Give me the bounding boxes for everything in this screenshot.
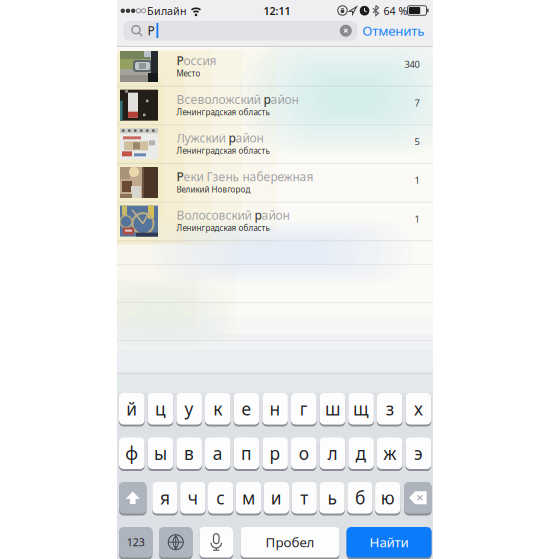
staticText: 12:11 bbox=[263, 4, 290, 18]
button[interactable]: Всеволожский bbox=[117, 86, 433, 124]
button[interactable]: и bbox=[264, 482, 289, 515]
button[interactable]: ч bbox=[180, 482, 205, 515]
staticText: айон bbox=[261, 207, 289, 223]
button[interactable]: Диктовка bbox=[199, 527, 233, 559]
button[interactable]: с bbox=[208, 482, 233, 515]
button[interactable]: Р bbox=[117, 47, 433, 86]
staticText: р bbox=[228, 130, 235, 146]
button[interactable]: Р bbox=[117, 163, 433, 202]
staticText: ь bbox=[328, 486, 337, 509]
button[interactable]: э bbox=[406, 437, 431, 471]
button[interactable]: Shift bbox=[119, 482, 146, 515]
staticText: з bbox=[386, 397, 394, 420]
staticText: г bbox=[300, 397, 308, 420]
staticText: м bbox=[242, 486, 255, 509]
button[interactable]: б bbox=[347, 482, 372, 515]
button[interactable]: щ bbox=[348, 393, 374, 426]
staticText: Отменить bbox=[362, 22, 424, 39]
staticText: в bbox=[184, 442, 194, 465]
staticText: 1 bbox=[414, 213, 419, 225]
button[interactable]: Удалить bbox=[404, 482, 431, 515]
staticText: о bbox=[299, 442, 309, 465]
button[interactable]: Отменить bbox=[362, 22, 424, 39]
button[interactable]: ю bbox=[375, 482, 400, 515]
staticText: айон bbox=[270, 91, 298, 107]
button[interactable]: к bbox=[205, 393, 231, 426]
staticText: Всеволожский bbox=[176, 91, 263, 107]
button[interactable]: г bbox=[291, 393, 317, 426]
staticText: Место bbox=[176, 68, 200, 79]
staticText: 1 bbox=[414, 174, 419, 186]
staticText: р bbox=[270, 442, 281, 465]
button[interactable]: ж bbox=[377, 437, 402, 471]
staticText: у bbox=[185, 397, 194, 420]
staticText: 5 bbox=[414, 135, 419, 148]
staticText: ю bbox=[381, 486, 395, 509]
button[interactable]: Сменить клавиатуру bbox=[159, 527, 192, 559]
staticText: Великий Новгород bbox=[176, 184, 250, 195]
staticText: е bbox=[241, 397, 251, 420]
staticText: п bbox=[241, 442, 252, 465]
staticText: р bbox=[254, 207, 261, 223]
staticText: ж bbox=[383, 442, 396, 465]
button[interactable]: м bbox=[236, 482, 261, 515]
staticText: я bbox=[160, 486, 170, 509]
button[interactable]: т bbox=[292, 482, 317, 515]
staticText: Пробел bbox=[265, 533, 314, 551]
staticText: 7 bbox=[414, 97, 419, 109]
staticText: ц bbox=[155, 397, 166, 420]
staticText: с bbox=[216, 486, 225, 509]
staticText: Ленинградская область bbox=[176, 223, 269, 233]
button[interactable]: й bbox=[119, 393, 145, 426]
staticText: к bbox=[213, 397, 222, 420]
staticText: Волосовский bbox=[176, 207, 254, 223]
staticText: х bbox=[414, 397, 423, 420]
button[interactable]: у bbox=[176, 393, 202, 426]
staticText: Р bbox=[147, 23, 154, 39]
staticText: 340 bbox=[404, 58, 419, 70]
staticText: ч bbox=[188, 486, 198, 509]
button[interactable]: о bbox=[291, 437, 317, 471]
staticText: Ленинградская область bbox=[176, 145, 269, 156]
button[interactable]: ф bbox=[119, 437, 145, 471]
button[interactable]: х bbox=[406, 393, 431, 426]
staticText: т bbox=[300, 486, 308, 509]
button[interactable]: 123 bbox=[119, 527, 152, 559]
staticText: а bbox=[213, 442, 223, 465]
staticText: э bbox=[414, 442, 423, 465]
button[interactable]: я bbox=[152, 482, 178, 515]
staticText: д bbox=[356, 442, 367, 465]
staticText: Лужский bbox=[176, 130, 228, 146]
button[interactable]: з bbox=[377, 393, 402, 426]
staticText: щ bbox=[353, 397, 369, 420]
button[interactable]: н bbox=[262, 393, 288, 426]
staticText: Р bbox=[176, 53, 183, 68]
button[interactable]: Волосовский bbox=[117, 202, 433, 240]
button[interactable]: Лужский bbox=[117, 124, 433, 163]
button[interactable]: Найти bbox=[346, 527, 431, 559]
button[interactable]: р bbox=[262, 437, 288, 471]
button[interactable]: Очистить текст bbox=[340, 25, 352, 37]
button[interactable]: Пробел bbox=[240, 527, 339, 559]
staticText: й bbox=[126, 397, 137, 420]
staticText: ф bbox=[125, 442, 138, 465]
button[interactable]: л bbox=[320, 437, 345, 471]
staticText: 123 bbox=[127, 535, 145, 549]
staticText: ы bbox=[154, 442, 167, 465]
staticText: л bbox=[327, 442, 337, 465]
button[interactable]: в bbox=[176, 437, 202, 471]
staticText: б bbox=[355, 486, 365, 509]
button[interactable]: е bbox=[234, 393, 259, 426]
staticText: р bbox=[263, 91, 270, 107]
button[interactable]: д bbox=[348, 437, 374, 471]
staticText: Найти bbox=[369, 533, 408, 551]
button[interactable]: ь bbox=[319, 482, 345, 515]
button[interactable]: ш bbox=[320, 393, 345, 426]
button[interactable]: ц bbox=[148, 393, 173, 426]
button[interactable]: п bbox=[234, 437, 259, 471]
button[interactable]: ы bbox=[148, 437, 173, 471]
staticText: и bbox=[271, 486, 282, 509]
button[interactable]: а bbox=[205, 437, 231, 471]
staticText: 64 % bbox=[383, 4, 407, 18]
staticText: оссия bbox=[183, 53, 216, 68]
